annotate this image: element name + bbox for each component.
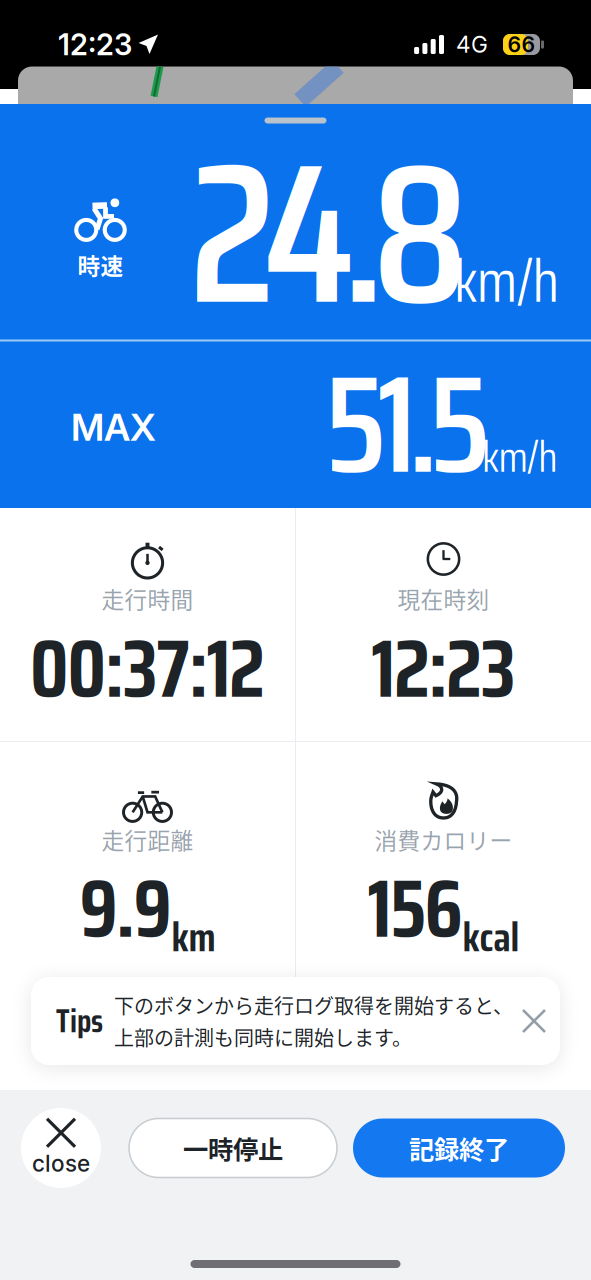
staticText: 一時停止 [183, 1130, 283, 1166]
staticText: 時速 [77, 248, 123, 281]
button[interactable]: Close [21, 1108, 101, 1188]
staticText: 下のボタンから走行ログ取得を開始すると、 [114, 990, 513, 1019]
staticText: 156 [367, 846, 463, 972]
staticText: Tips [56, 996, 103, 1046]
staticText: 上部の計測も同時に開始します。 [114, 1022, 412, 1051]
staticText: 12:23 [371, 606, 516, 732]
staticText: km/h [454, 235, 559, 327]
staticText: 記録終了 [409, 1130, 509, 1166]
staticText: 12:23 [58, 27, 132, 62]
staticText: 4G [456, 31, 488, 58]
staticText: MAX [71, 405, 156, 450]
button[interactable]: 記録終了 [353, 1118, 565, 1177]
staticText: 走行距離 [101, 823, 193, 856]
staticText: 現在時刻 [397, 582, 489, 615]
staticText: kcal [463, 906, 520, 969]
staticText: 9.9 [79, 846, 172, 972]
button[interactable]: Tips [31, 977, 560, 1065]
staticText: 消費カロリー [374, 823, 512, 856]
staticText: 24.8 [189, 79, 468, 388]
staticText: km [172, 906, 216, 969]
staticText: km/h [482, 423, 557, 491]
staticText: 走行時間 [101, 582, 193, 615]
staticText: 51.5 [325, 316, 490, 532]
staticText: 66 [507, 32, 535, 57]
staticText: close [32, 1150, 90, 1177]
button[interactable]: 一時停止 [129, 1118, 337, 1177]
staticText: 00:37:12 [30, 606, 265, 732]
